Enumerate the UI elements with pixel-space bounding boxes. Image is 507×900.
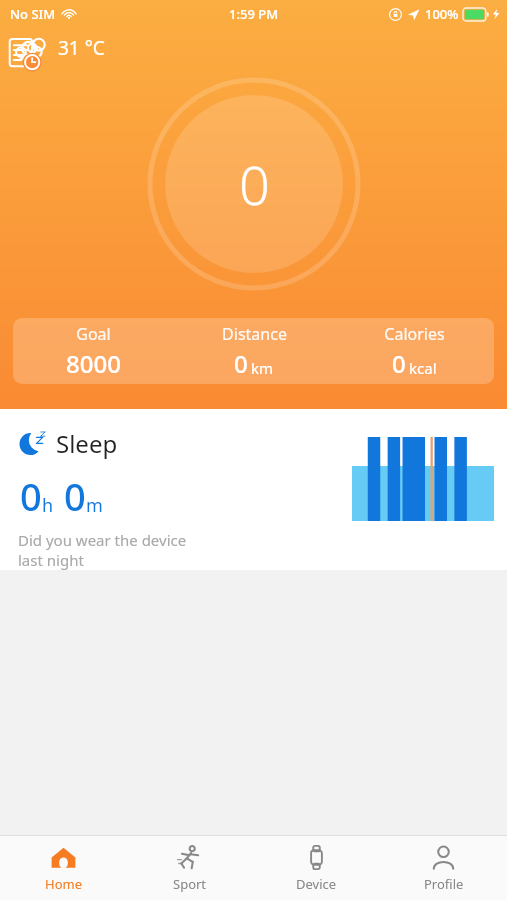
staticText: kcal — [409, 358, 437, 378]
other: Weather — [16, 34, 54, 62]
staticText: 0 — [392, 347, 406, 380]
staticText: 0 — [64, 470, 86, 522]
staticText: Home — [45, 875, 82, 893]
button[interactable]: Calories — [334, 318, 494, 384]
button[interactable]: Distance — [174, 318, 334, 384]
button[interactable]: Sport — [126, 836, 253, 900]
staticText: Sport — [173, 875, 207, 893]
staticText: Goal — [76, 323, 111, 345]
button[interactable]: Sleep — [0, 409, 507, 570]
staticText: 1:59 PM — [229, 5, 279, 23]
staticText: Device — [296, 875, 337, 893]
staticText: m — [86, 493, 103, 518]
staticText: Distance — [222, 323, 287, 345]
staticText: 0 — [20, 470, 42, 522]
staticText: 31 °C — [58, 35, 105, 61]
button[interactable]: Device — [253, 836, 380, 900]
staticText: Calories — [384, 323, 445, 345]
staticText: 8000 — [66, 347, 121, 380]
staticText: 100% — [425, 5, 459, 23]
button[interactable]: 0 — [148, 78, 360, 290]
staticText: No SIM — [10, 5, 56, 23]
staticText: Profile — [424, 875, 464, 893]
staticText: km — [251, 358, 274, 378]
button[interactable]: History — [0, 30, 48, 78]
staticText: 0 — [234, 347, 248, 380]
button[interactable]: Profile — [380, 836, 507, 900]
button[interactable]: Home — [0, 836, 126, 900]
staticText: Did you wear the device last night — [18, 530, 187, 570]
staticText: 0 — [239, 147, 270, 221]
staticText: Sleep — [56, 427, 118, 460]
button[interactable]: Weather — [16, 34, 105, 62]
button[interactable]: Goal — [13, 318, 174, 384]
staticText: h — [42, 493, 54, 518]
